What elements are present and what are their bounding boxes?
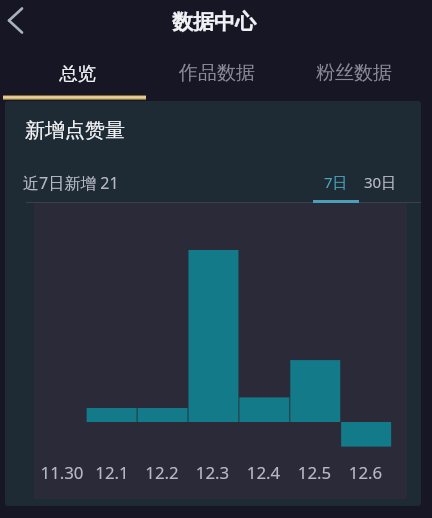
staticText: 12.4 [238,461,289,484]
staticText: 数据中心 [172,9,256,35]
staticText: 30日 [364,172,397,192]
staticText: 12.6 [340,461,391,484]
staticText: 7日 [324,172,348,192]
staticText: 新增点赞量 [25,118,125,143]
button[interactable]: 作品数据 [148,46,285,100]
button[interactable]: 7日 [324,172,348,192]
staticText: 作品数据 [179,61,255,85]
button[interactable]: Back [0,5,32,41]
staticText: 近7日新增 21 [23,172,119,194]
button[interactable]: 总览 [10,46,148,100]
staticText: 粉丝数据 [316,61,392,85]
staticText: 12.5 [289,461,340,484]
staticText: 总览 [59,62,96,85]
staticText: 12.1 [87,461,137,484]
staticText: 11.30 [37,461,87,484]
staticText: 12.2 [137,461,187,484]
button[interactable]: 粉丝数据 [285,46,422,100]
staticText: 12.3 [187,461,238,484]
button[interactable]: 30日 [364,172,397,192]
